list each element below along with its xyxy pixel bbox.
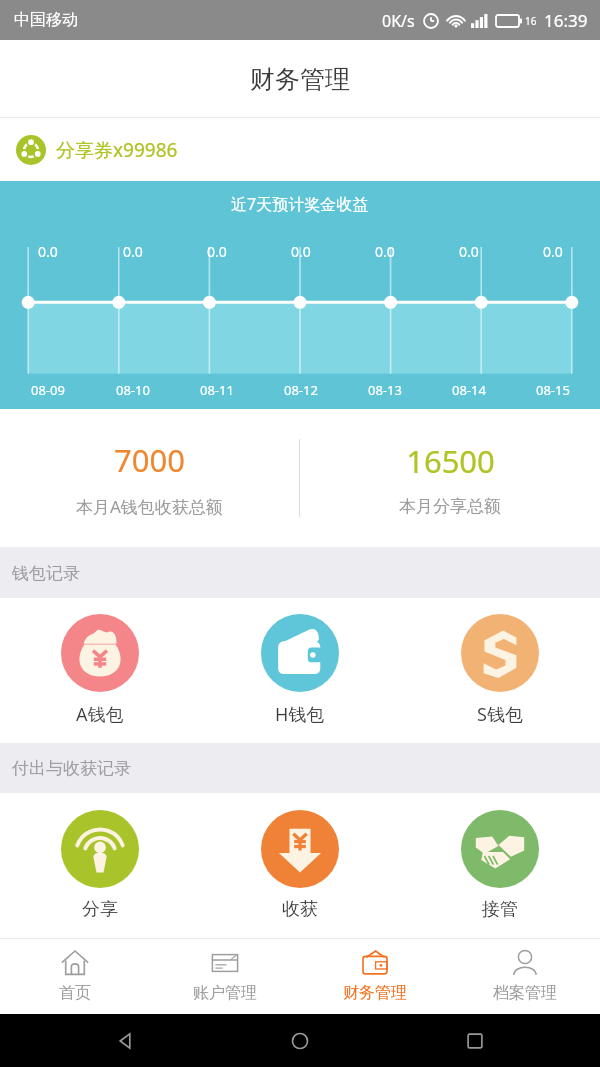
staticText: A钱包 xyxy=(76,702,124,727)
staticText: 近7天预计奖金收益 xyxy=(231,193,369,215)
staticText: 08-13 xyxy=(368,381,402,399)
staticText: 钱包记录 xyxy=(12,563,80,584)
staticText: 0.0 xyxy=(207,242,227,261)
staticText: 0.0 xyxy=(375,242,395,261)
button[interactable]: 收获 xyxy=(200,793,400,938)
staticText: 08-12 xyxy=(284,381,318,399)
staticText: 08-10 xyxy=(116,381,150,399)
staticText: 财务管理 xyxy=(343,983,407,1003)
button[interactable]: Home xyxy=(285,1026,315,1056)
button[interactable]: 账户管理 xyxy=(150,939,300,1014)
button[interactable]: 档案管理 xyxy=(450,939,600,1014)
staticText: 收获 xyxy=(282,898,318,921)
staticText: 财务管理 xyxy=(250,64,350,95)
button[interactable]: 分享 xyxy=(0,793,200,938)
staticText: 付出与收获记录 xyxy=(12,758,131,779)
staticText: 7000 xyxy=(114,439,185,481)
staticText: 账户管理 xyxy=(193,983,257,1003)
button[interactable]: 7000 xyxy=(0,431,299,526)
staticText: 中国移动 xyxy=(14,10,78,30)
staticText: 0.0 xyxy=(38,242,58,261)
button[interactable]: Recents xyxy=(460,1026,490,1056)
staticText: 08-09 xyxy=(31,381,65,399)
staticText: 0K/s xyxy=(382,10,415,32)
staticText: 16 xyxy=(525,14,537,28)
staticText: 首页 xyxy=(59,983,91,1003)
staticText: 0.0 xyxy=(459,242,479,261)
button[interactable]: S钱包 xyxy=(400,598,600,743)
button[interactable]: 首页 xyxy=(0,939,150,1014)
staticText: 档案管理 xyxy=(493,983,557,1003)
button[interactable]: Back xyxy=(110,1026,140,1056)
staticText: 16500 xyxy=(406,440,495,482)
staticText: 08-15 xyxy=(536,381,570,399)
button[interactable]: 财务管理 xyxy=(300,939,450,1014)
button[interactable]: A钱包 xyxy=(0,598,200,743)
staticText: 16:39 xyxy=(544,9,588,32)
staticText: 分享 xyxy=(82,898,118,921)
button[interactable]: 接管 xyxy=(400,793,600,938)
staticText: 分享券x99986 xyxy=(56,137,178,163)
staticText: 0.0 xyxy=(291,242,311,261)
staticText: 0.0 xyxy=(123,242,143,261)
button[interactable]: 16500 xyxy=(300,432,600,525)
staticText: 接管 xyxy=(482,898,518,921)
staticText: H钱包 xyxy=(275,702,325,727)
staticText: 08-11 xyxy=(200,381,234,399)
button[interactable]: H钱包 xyxy=(200,598,400,743)
staticText: S钱包 xyxy=(477,702,523,727)
staticText: 本月A钱包收获总额 xyxy=(76,495,223,518)
staticText: 0.0 xyxy=(543,242,563,261)
button[interactable]: 分享券x99986 xyxy=(0,118,600,181)
staticText: 本月分享总额 xyxy=(399,496,501,517)
staticText: 08-14 xyxy=(452,381,486,399)
